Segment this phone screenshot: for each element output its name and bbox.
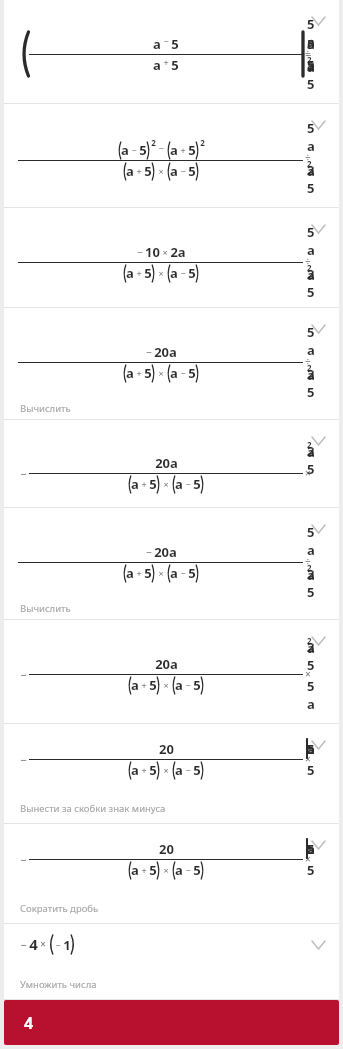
- staticText: −: [180, 165, 186, 177]
- button[interactable]: −: [4, 724, 339, 824]
- staticText: 5: [144, 162, 152, 180]
- staticText: −: [146, 545, 152, 559]
- staticText: 2: [151, 137, 156, 148]
- staticText: 5: [193, 761, 201, 779]
- staticText: 5: [188, 364, 196, 382]
- staticText: 5: [171, 56, 179, 74]
- staticText: ×: [158, 267, 164, 279]
- button[interactable]: −: [4, 620, 339, 724]
- staticText: +: [136, 267, 142, 279]
- staticText: −: [55, 939, 61, 951]
- staticText: −: [20, 852, 27, 867]
- staticText: 5: [139, 141, 147, 159]
- staticText: a: [175, 861, 183, 879]
- staticText: ×: [158, 367, 164, 379]
- staticText: ×: [162, 246, 168, 258]
- staticText: +: [136, 567, 142, 579]
- staticText: Сократить дробь: [20, 902, 99, 915]
- staticText: a: [153, 56, 161, 74]
- staticText: −: [185, 679, 191, 691]
- button[interactable]: −: [4, 508, 339, 620]
- staticText: 5: [188, 162, 196, 180]
- button[interactable]: −: [4, 208, 339, 308]
- staticText: ×: [163, 679, 169, 691]
- staticText: 1: [63, 936, 71, 954]
- staticText: ×: [158, 567, 164, 579]
- staticText: −: [131, 144, 137, 156]
- staticText: 5: [188, 141, 196, 159]
- staticText: a: [175, 761, 183, 779]
- staticText: +: [141, 679, 147, 691]
- staticText: a: [126, 564, 134, 582]
- staticText: −: [185, 864, 191, 876]
- staticText: 20a: [155, 454, 178, 472]
- staticText: 5: [149, 761, 157, 779]
- button[interactable]: a: [4, 104, 339, 208]
- button[interactable]: 4: [4, 1000, 339, 1045]
- staticText: 2a: [170, 243, 186, 261]
- staticText: 5: [171, 35, 179, 53]
- staticText: −: [146, 345, 152, 359]
- staticText: Умножить числа: [20, 978, 97, 991]
- button[interactable]: Expand step: [303, 830, 333, 860]
- staticText: −: [20, 937, 27, 952]
- button[interactable]: −: [4, 308, 339, 420]
- staticText: a: [170, 162, 178, 180]
- staticText: −: [158, 142, 164, 154]
- staticText: 20a: [154, 343, 177, 361]
- button[interactable]: Expand step: [303, 314, 333, 344]
- staticText: a: [175, 676, 183, 694]
- staticText: a: [175, 475, 183, 493]
- staticText: 5: [144, 364, 152, 382]
- button[interactable]: Expand step: [303, 514, 333, 544]
- staticText: Вычислить: [20, 602, 71, 612]
- staticText: 5: [193, 861, 201, 879]
- button[interactable]: Expand step: [303, 214, 333, 244]
- staticText: +: [163, 56, 169, 68]
- staticText: 20: [159, 840, 174, 858]
- staticText: a: [170, 564, 178, 582]
- staticText: a: [126, 162, 134, 180]
- button[interactable]: Expand step: [303, 730, 333, 760]
- staticText: ×: [163, 478, 169, 490]
- button[interactable]: Expand step: [303, 626, 333, 656]
- staticText: −: [180, 367, 186, 379]
- staticText: 10: [145, 243, 160, 261]
- staticText: a: [153, 35, 161, 53]
- staticText: ×: [163, 864, 169, 876]
- button[interactable]: a: [4, 0, 339, 104]
- button[interactable]: −: [4, 824, 339, 924]
- button[interactable]: Expand step: [303, 6, 333, 36]
- staticText: 5: [188, 564, 196, 582]
- button[interactable]: Expand step: [303, 426, 333, 456]
- staticText: +: [141, 764, 147, 776]
- staticText: +: [180, 144, 186, 156]
- staticText: 2: [200, 137, 205, 148]
- staticText: a: [131, 861, 139, 879]
- button[interactable]: Expand step: [303, 110, 333, 140]
- staticText: 5: [149, 676, 157, 694]
- staticText: −: [20, 752, 27, 767]
- button[interactable]: −: [4, 420, 339, 508]
- staticText: 20a: [155, 655, 178, 673]
- staticText: 5: [144, 264, 152, 282]
- staticText: a: [170, 264, 178, 282]
- staticText: 20a: [154, 543, 177, 561]
- button[interactable]: Expand step: [303, 930, 333, 960]
- staticText: 4: [24, 1012, 34, 1034]
- staticText: −: [180, 267, 186, 279]
- staticText: 5: [193, 475, 201, 493]
- button[interactable]: −: [4, 924, 339, 1000]
- staticText: −: [163, 35, 169, 47]
- staticText: −: [20, 667, 27, 682]
- staticText: a: [121, 141, 129, 159]
- staticText: 5: [144, 564, 152, 582]
- staticText: a: [170, 141, 178, 159]
- staticText: 4: [29, 934, 38, 954]
- staticText: 20: [159, 740, 174, 758]
- staticText: −: [185, 764, 191, 776]
- staticText: 5: [149, 475, 157, 493]
